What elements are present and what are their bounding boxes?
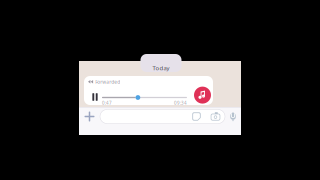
button[interactable]: Stickers <box>187 109 206 123</box>
button[interactable]: Pause <box>89 91 101 103</box>
button[interactable]: Today <box>140 54 181 72</box>
button[interactable]: Record voice message <box>225 107 241 125</box>
staticText: Forwarded <box>95 79 120 85</box>
button[interactable]: Camera <box>206 109 225 123</box>
staticText: Today <box>152 64 169 72</box>
button[interactable]: Attach <box>81 107 98 125</box>
staticText: 09:34 <box>174 100 187 106</box>
staticText: 0:47 <box>102 100 112 106</box>
